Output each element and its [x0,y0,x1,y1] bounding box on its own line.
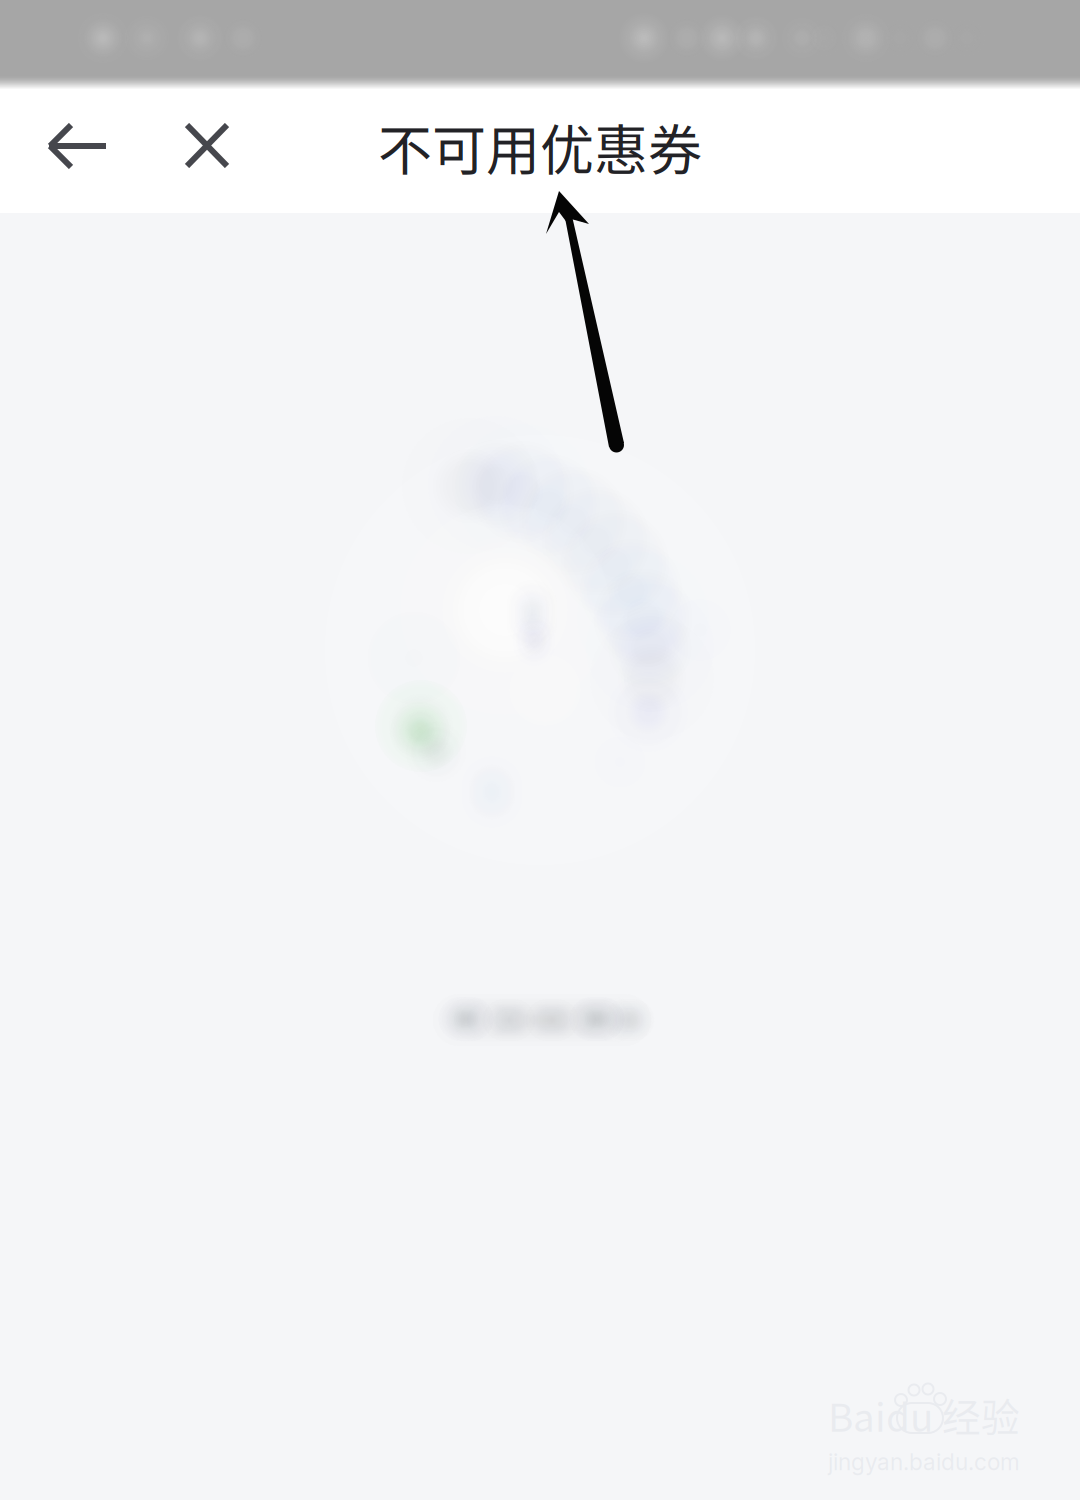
staticText: jingyan.baidu.com [828,1448,1020,1476]
button[interactable]: 关闭 [175,114,239,178]
staticText: Baidu 经验 [828,1387,1020,1443]
staticText: 不可用优惠券 [378,108,702,186]
button[interactable]: 返回 [39,114,117,178]
